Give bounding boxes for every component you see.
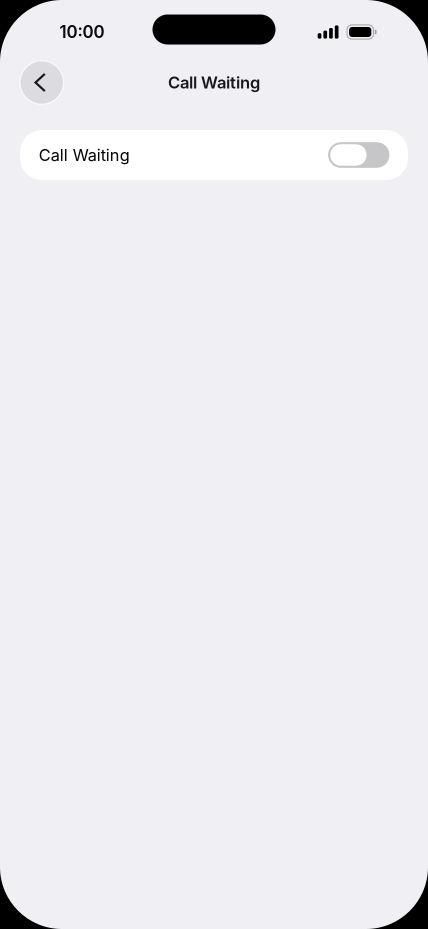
staticText: Call Waiting [39,145,130,165]
staticText: Call Waiting [168,72,260,92]
button[interactable]: Back [20,61,63,104]
button[interactable]: Call Waiting [328,142,389,168]
button[interactable]: Call Waiting [20,130,408,180]
staticText: 10:00 [59,22,104,42]
